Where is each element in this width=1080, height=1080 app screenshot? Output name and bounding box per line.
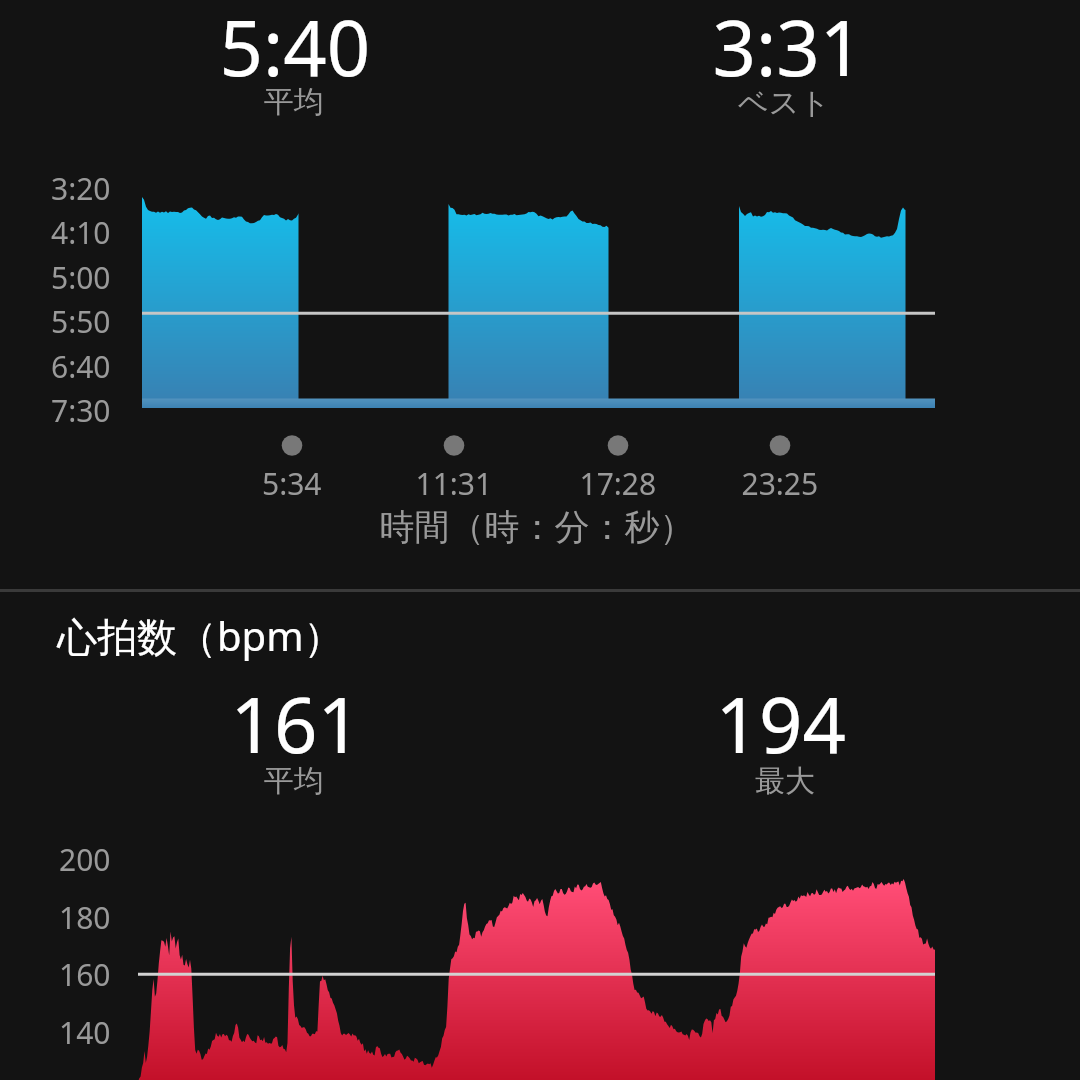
- button[interactable]: 最大心拍数 194: [540, 682, 1080, 810]
- button[interactable]: 平均ペース 5:40: [0, 0, 540, 138]
- button[interactable]: 平均心拍数 161: [0, 682, 540, 810]
- button[interactable]: ペースグラフ、時間（時：分：秒）: [0, 138, 1080, 589]
- button[interactable]: ベストペース 3:31: [540, 0, 1080, 138]
- button[interactable]: 心拍数（bpm）: [0, 592, 1080, 682]
- button[interactable]: 心拍数グラフ: [0, 810, 1080, 1080]
